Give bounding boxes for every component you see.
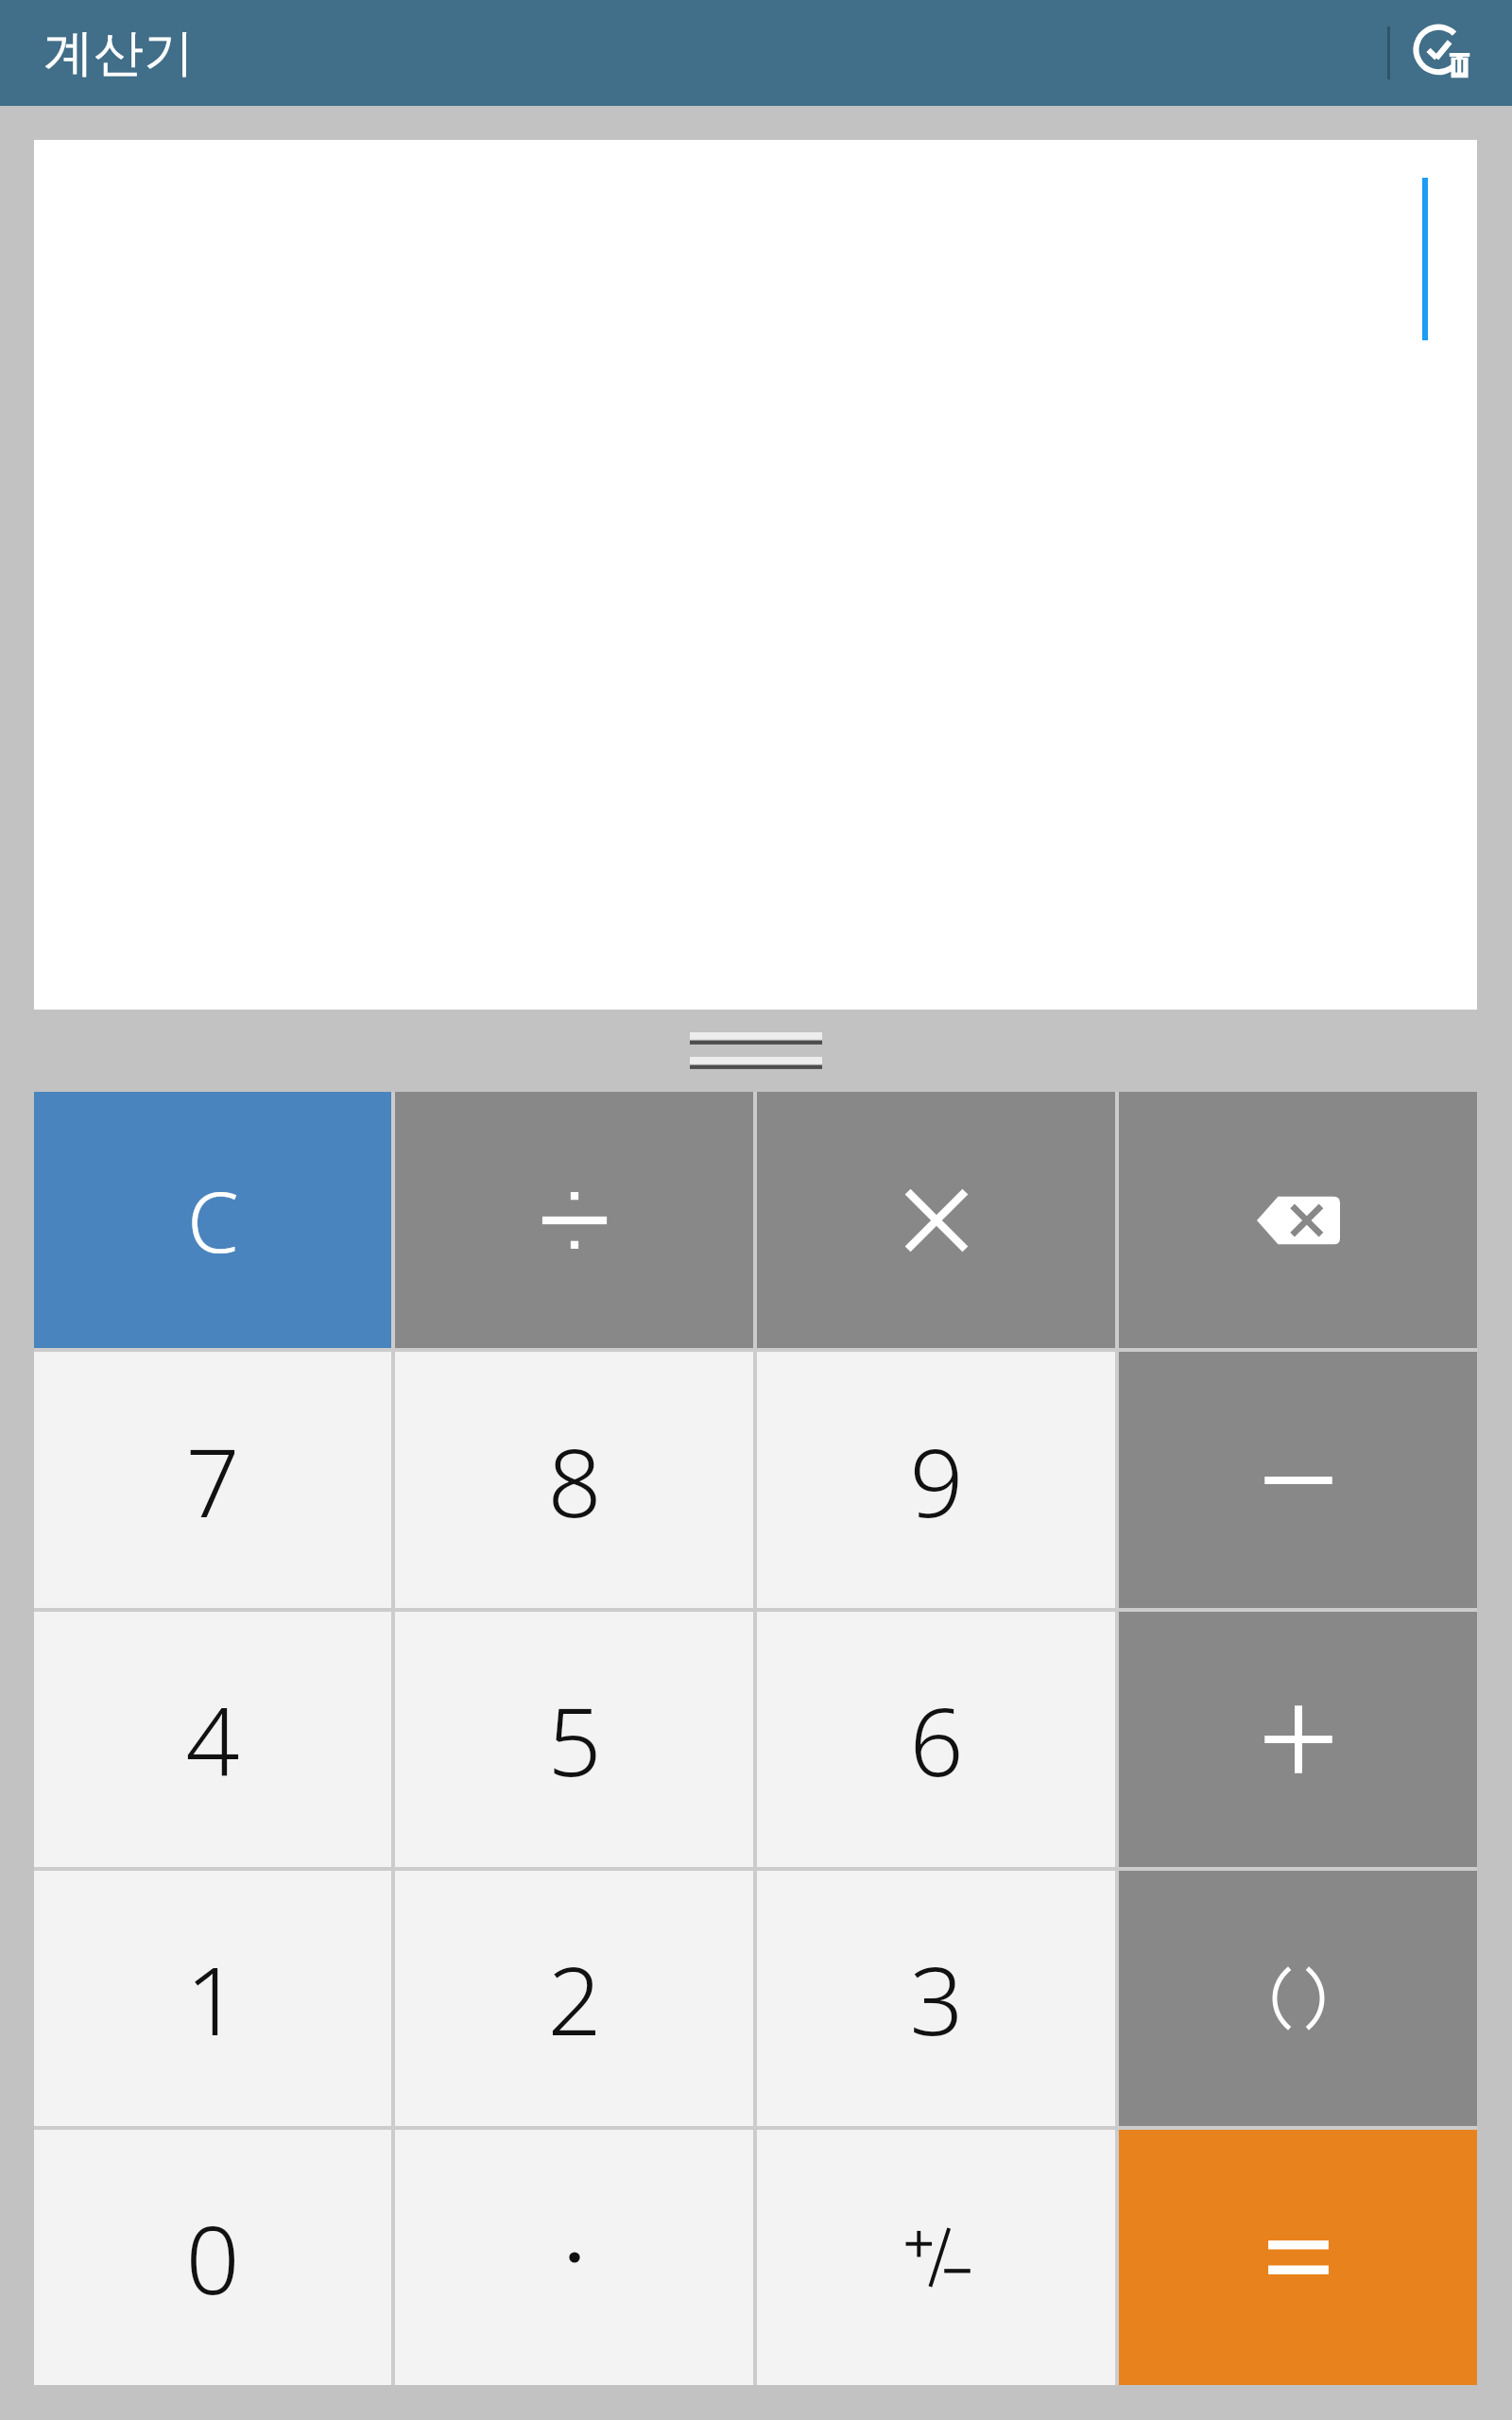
staticText: 계산기 — [43, 22, 194, 85]
button[interactable] — [395, 1092, 753, 1348]
button[interactable] — [395, 2130, 753, 2385]
button[interactable] — [1119, 1612, 1477, 1867]
button[interactable]: 6 — [757, 1612, 1115, 1867]
button[interactable] — [1119, 1871, 1477, 2126]
staticText: 6 — [909, 1675, 964, 1804]
button[interactable]: 2 — [395, 1871, 753, 2126]
button[interactable]: 5 — [395, 1612, 753, 1867]
staticText: 2 — [547, 1934, 602, 2063]
staticText: C — [187, 1164, 239, 1277]
staticText: 9 — [909, 1416, 964, 1545]
button[interactable]: 0 — [34, 2130, 391, 2385]
button[interactable] — [757, 1092, 1115, 1348]
button[interactable] — [757, 2130, 1115, 2385]
staticText: 8 — [547, 1416, 602, 1545]
button[interactable]: Clear history — [1399, 8, 1489, 98]
button[interactable] — [1119, 1352, 1477, 1608]
staticText: 4 — [185, 1675, 240, 1804]
button[interactable]: C — [34, 1092, 391, 1348]
button[interactable]: 9 — [757, 1352, 1115, 1608]
staticText: 3 — [909, 1934, 964, 2063]
staticText: 0 — [185, 2193, 240, 2322]
button[interactable]: Resize display — [0, 1010, 1512, 1092]
button[interactable] — [1119, 2130, 1477, 2385]
button[interactable]: Backspace — [1119, 1092, 1477, 1348]
staticText: 1 — [185, 1934, 240, 2063]
button[interactable]: 7 — [34, 1352, 391, 1608]
button[interactable] — [34, 140, 1477, 1010]
button[interactable]: 1 — [34, 1871, 391, 2126]
staticText: 7 — [185, 1416, 240, 1545]
staticText: 5 — [547, 1675, 602, 1804]
button[interactable]: 3 — [757, 1871, 1115, 2126]
button[interactable]: 4 — [34, 1612, 391, 1867]
button[interactable]: 8 — [395, 1352, 753, 1608]
